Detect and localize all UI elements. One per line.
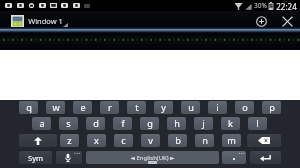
button[interactable]: z [60,134,79,147]
button[interactable]: m [222,134,241,147]
staticText: y [161,101,166,114]
staticText: j [202,117,205,130]
button[interactable]: Window 1 [28,16,63,26]
staticText: r [108,101,112,114]
button[interactable]: Enter [250,151,281,164]
button[interactable]: Backspace [247,134,281,147]
staticText: c [121,134,126,147]
staticText: t [135,101,139,114]
button[interactable]: x [87,134,106,147]
staticText: w [52,101,60,114]
button[interactable]: p [262,101,281,114]
staticText: v [148,134,153,147]
staticText: l [256,117,259,130]
button[interactable]: Sym [19,151,52,164]
button[interactable]: Close [278,12,296,30]
staticText: z [67,134,72,147]
button[interactable]: Shift [19,134,57,147]
staticText: a [39,117,45,130]
staticText: q [26,101,32,114]
button[interactable]: o [235,101,254,114]
button[interactable]: j [194,117,213,130]
staticText: Sym [28,153,43,163]
staticText: p [269,101,275,114]
staticText: ◄ English(UK) ► [130,154,175,162]
button[interactable]: b [168,134,187,147]
staticText: k [228,117,233,130]
button[interactable]: i [208,101,227,114]
button[interactable]: q [19,101,38,114]
staticText: e [80,101,86,114]
button[interactable]: t [127,101,146,114]
button[interactable]: e [73,101,92,114]
staticText: m [227,134,236,147]
button[interactable]: w [46,101,65,114]
button[interactable]: Period [222,151,246,164]
staticText: x [94,134,99,147]
button[interactable]: r [100,101,119,114]
staticText: h [174,117,180,130]
staticText: 22:24 [276,1,297,12]
button[interactable]: u [181,101,200,114]
button[interactable]: f [113,117,132,130]
staticText: s [66,117,71,130]
staticText: f [121,117,125,130]
button[interactable]: New window [252,12,270,30]
button[interactable]: c [114,134,133,147]
button[interactable]: s [59,117,78,130]
button[interactable]: Window thumbnail [11,15,24,28]
staticText: n [202,134,208,147]
staticText: b [175,134,181,147]
button[interactable]: a [32,117,51,130]
button[interactable]: y [154,101,173,114]
button[interactable]: d [86,117,105,130]
staticText: o [242,101,248,114]
staticText: i [216,101,219,114]
button[interactable]: n [195,134,214,147]
button[interactable]: l [248,117,267,130]
staticText: d [93,117,99,130]
button[interactable]: g [140,117,159,130]
button[interactable]: Voice input [56,151,82,164]
button[interactable]: v [141,134,160,147]
button[interactable]: h [167,117,186,130]
staticText: 30% [254,1,267,10]
staticText: u [188,101,194,114]
button[interactable]: k [221,117,240,130]
button[interactable]: Space [86,151,219,164]
staticText: g [147,117,153,130]
